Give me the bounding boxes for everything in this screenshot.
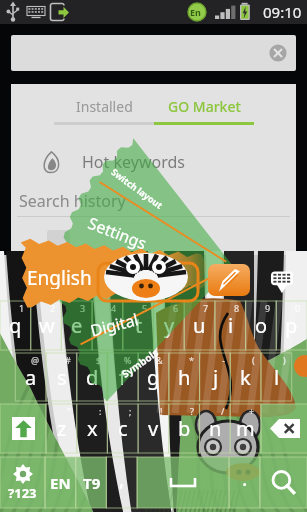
button[interactable]: m (230, 404, 261, 453)
staticText: ) (283, 354, 286, 366)
button[interactable]: k (230, 353, 261, 401)
staticText: @ (31, 354, 40, 366)
staticText: s (57, 364, 67, 391)
staticText: x (87, 415, 98, 442)
staticText: f (119, 364, 126, 391)
button[interactable]: y (154, 301, 185, 350)
button[interactable]: i (215, 301, 246, 350)
staticText: a (25, 364, 37, 391)
button[interactable]: T9 (76, 457, 107, 508)
staticText: q (9, 312, 22, 339)
button[interactable]: Installed (54, 84, 154, 128)
button[interactable]: d (77, 353, 108, 401)
button[interactable]: n (200, 404, 231, 453)
staticText: Installed (76, 97, 133, 116)
button[interactable]: f (107, 353, 138, 401)
staticText: 1 (19, 302, 25, 314)
button[interactable]: z (46, 404, 77, 453)
staticText: * (189, 354, 194, 366)
staticText: : (99, 405, 102, 417)
button[interactable]: Shift (0, 404, 46, 453)
button[interactable]: e (61, 301, 92, 350)
staticText: 09:10 (263, 2, 302, 22)
button[interactable]: Hide keyboard (264, 267, 300, 297)
staticText: - (222, 354, 225, 366)
button[interactable]: Hot keywords (11, 142, 296, 182)
button[interactable]: . (229, 457, 260, 508)
staticText: # (65, 354, 71, 366)
staticText: GO Market (168, 97, 241, 116)
button[interactable]: EN (45, 457, 76, 508)
button[interactable]: v (138, 404, 169, 453)
staticText: . (242, 465, 248, 492)
staticText: g (147, 364, 160, 391)
staticText: d (86, 364, 99, 391)
button[interactable]: g (138, 353, 169, 401)
button[interactable]: x (77, 404, 108, 453)
staticText: k (240, 364, 251, 391)
button[interactable]: Clear (266, 41, 290, 65)
staticText: v (148, 415, 159, 442)
button[interactable]: Backspace (261, 404, 307, 453)
button[interactable]: Space (137, 457, 229, 508)
button[interactable]: q (0, 301, 31, 350)
staticText: 0 (295, 302, 301, 314)
staticText: e (71, 312, 83, 339)
button[interactable]: l (261, 353, 292, 401)
staticText: l (274, 364, 280, 391)
staticText: t (135, 312, 143, 339)
staticText: i (228, 312, 234, 339)
staticText: ; (129, 405, 132, 417)
staticText: 9 (265, 302, 271, 314)
staticText: z (57, 415, 67, 442)
button[interactable]: o (246, 301, 277, 350)
staticText: 6 (173, 302, 179, 314)
staticText: 8 (234, 302, 240, 314)
staticText: r (103, 312, 112, 339)
staticText: Settings (85, 212, 150, 254)
button[interactable]: a (15, 353, 46, 401)
button[interactable]: b (169, 404, 200, 453)
staticText: & (156, 354, 163, 366)
staticText: Search history (19, 190, 126, 212)
staticText: Switch layout (109, 165, 166, 211)
staticText: En (190, 6, 201, 18)
staticText: % (124, 354, 132, 366)
staticText: h (178, 364, 191, 391)
staticText: p (285, 312, 298, 339)
button[interactable]: Search (260, 457, 307, 508)
staticText: + (249, 405, 255, 417)
button[interactable]: GO Market (154, 84, 254, 128)
staticText: w (39, 312, 55, 339)
staticText: ?123 (8, 484, 37, 502)
staticText: o (255, 312, 268, 339)
button[interactable]: u (184, 301, 215, 350)
button[interactable]: j (200, 353, 231, 401)
staticText: Symbols (119, 345, 161, 381)
staticText: m (236, 415, 255, 442)
button[interactable]: Clear (11, 35, 296, 71)
button[interactable]: p (276, 301, 307, 350)
staticText: ! (160, 405, 163, 417)
staticText: j (213, 364, 219, 391)
button[interactable]: , (106, 457, 137, 508)
staticText: u (193, 312, 206, 339)
staticText: y (164, 312, 175, 339)
button[interactable]: r (92, 301, 123, 350)
staticText: Digital (88, 308, 141, 341)
button[interactable]: Settings (0, 457, 45, 508)
staticText: 5 (142, 302, 148, 314)
staticText: $ (96, 354, 102, 366)
button[interactable]: h (169, 353, 200, 401)
button[interactable]: t (123, 301, 154, 350)
staticText: / (221, 405, 225, 417)
staticText: 4 (111, 302, 117, 314)
button[interactable]: c (107, 404, 138, 453)
button[interactable]: w (31, 301, 62, 350)
button[interactable]: Search history (11, 184, 296, 218)
button[interactable]: Edit theme (208, 264, 250, 296)
staticText: Hot keywords (82, 151, 185, 173)
button[interactable]: s (46, 353, 77, 401)
staticText: 7 (203, 302, 209, 314)
staticText: ( (252, 354, 255, 366)
